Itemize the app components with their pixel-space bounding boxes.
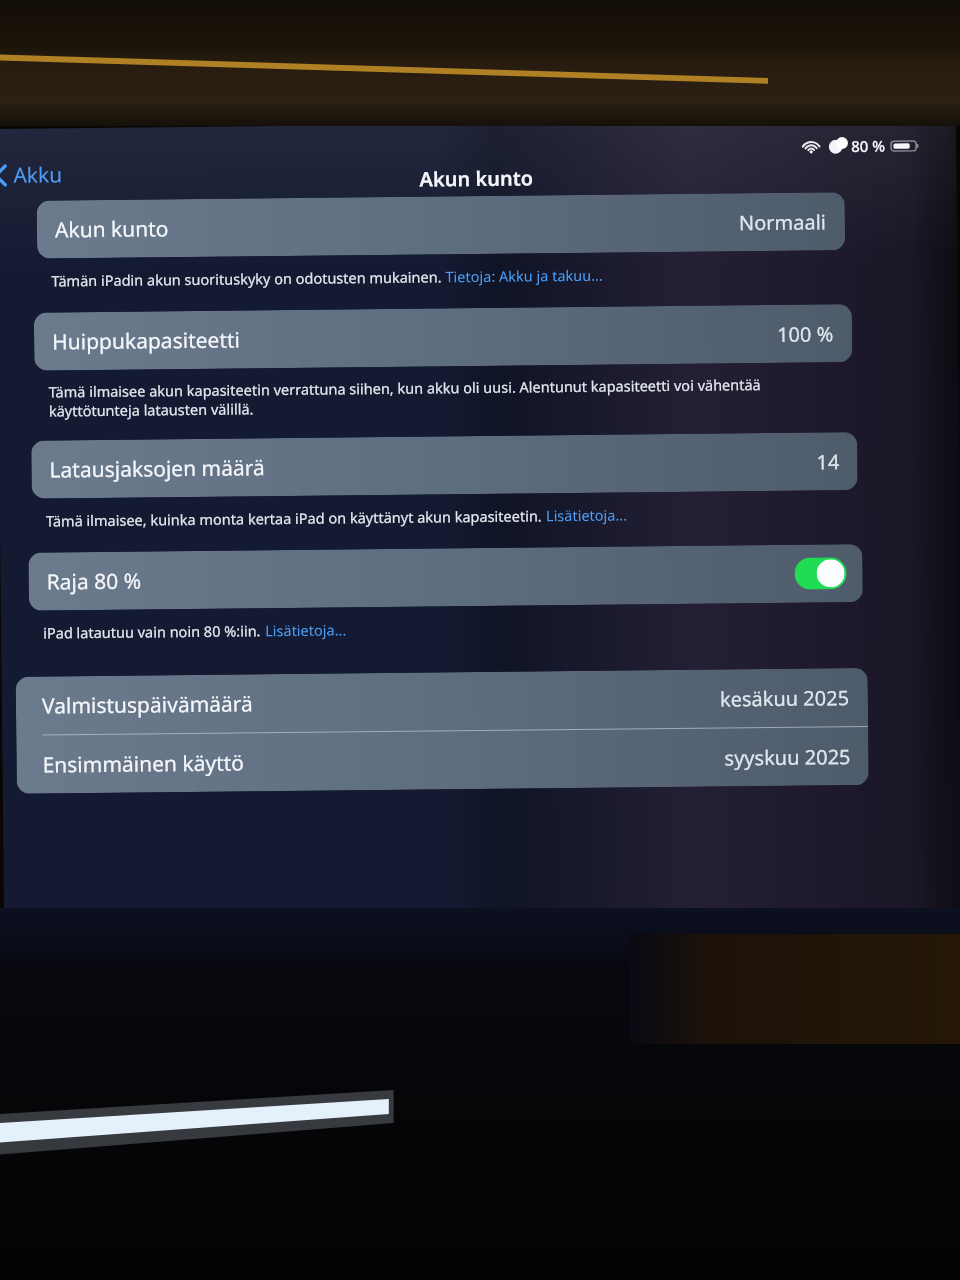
- staticText: Tietoja: Akku ja takuu...: [445, 265, 604, 286]
- staticText: Latausjaksojen määrä: [49, 453, 266, 484]
- staticText: Huippukapasiteetti: [52, 325, 240, 356]
- staticText: Valmistuspäivämäärä: [42, 689, 253, 721]
- staticText: Normaali: [739, 208, 827, 236]
- staticText: 80 %: [851, 136, 885, 156]
- button[interactable]: Ensimmäinen käyttö: [16, 727, 869, 794]
- staticText: 14: [816, 448, 840, 475]
- staticText: Tämä ilmaisee, kuinka monta kertaa iPad …: [46, 505, 546, 530]
- staticText: Ensimmäinen käyttö: [42, 748, 245, 780]
- staticText: Akun kunto: [419, 164, 534, 193]
- staticText: Tämän iPadin akun suorituskyky on odotus…: [51, 266, 446, 290]
- button[interactable]: Akun kunto: [37, 192, 845, 259]
- button[interactable]: Valmistuspäivämäärä: [16, 668, 868, 735]
- button[interactable]: Raja 80 %: [28, 544, 863, 611]
- button[interactable]: Akku: [0, 157, 69, 193]
- staticText: kesäkuu 2025: [720, 684, 850, 712]
- staticText: Akku: [13, 160, 62, 190]
- button[interactable]: Huippukapasiteetti: [34, 304, 852, 371]
- staticText: syyskuu 2025: [724, 743, 851, 771]
- staticText: Akun kunto: [55, 214, 169, 244]
- staticText: iPad latautuu vain noin 80 %:iin.: [43, 620, 265, 643]
- staticText: Tämä ilmaisee akun kapasiteetin verrattu…: [48, 373, 841, 420]
- staticText: 100 %: [777, 320, 834, 348]
- other: Raja 80 % päällä: [794, 557, 847, 590]
- staticText: Lisätietoja...: [546, 504, 628, 525]
- button[interactable]: Latausjaksojen määrä: [31, 432, 858, 499]
- staticText: Raja 80 %: [46, 566, 142, 596]
- staticText: Lisätietoja...: [265, 619, 347, 640]
